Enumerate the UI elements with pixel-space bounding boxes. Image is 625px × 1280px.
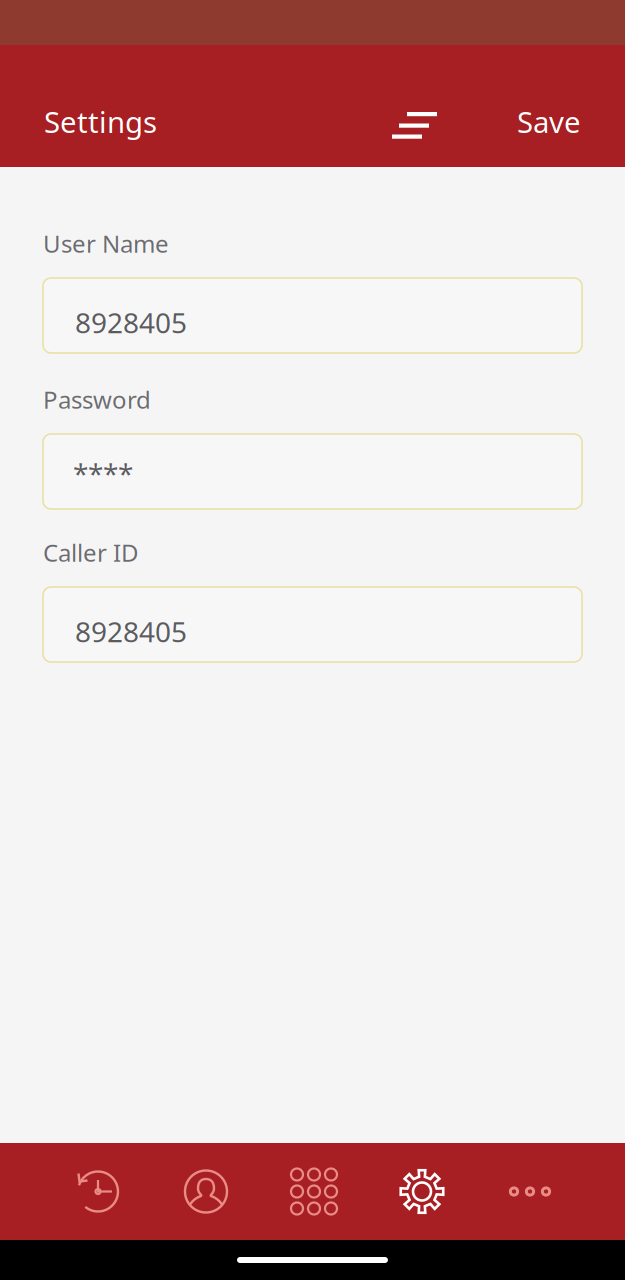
button[interactable]: **** [43, 434, 582, 509]
button[interactable]: More [476, 1143, 584, 1240]
staticText: User Name [43, 228, 169, 259]
button[interactable]: 8928405 [43, 278, 582, 353]
staticText: 8928405 [75, 613, 187, 650]
button[interactable]: Save [493, 86, 625, 167]
button[interactable]: 8928405 [43, 587, 582, 662]
button[interactable]: Contacts [152, 1143, 260, 1240]
staticText: 8928405 [75, 304, 187, 341]
button[interactable]: Settings [0, 86, 181, 167]
button[interactable]: Keypad [260, 1143, 368, 1240]
staticText: Password [43, 384, 151, 415]
staticText: **** [73, 455, 133, 492]
button[interactable]: Recents [44, 1143, 152, 1240]
staticText: Caller ID [43, 537, 139, 568]
button[interactable]: Sort [374, 96, 455, 167]
staticText: Save [517, 102, 581, 141]
staticText: Settings [44, 102, 157, 141]
button[interactable]: Settings [368, 1143, 476, 1240]
